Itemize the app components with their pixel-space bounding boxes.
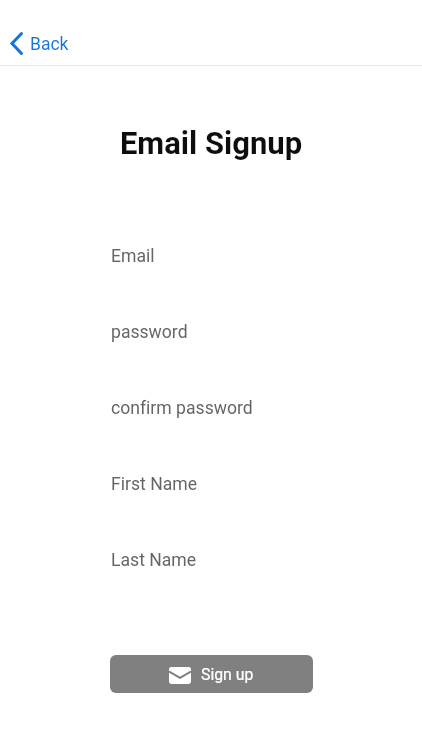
button[interactable]: Email: [111, 243, 315, 269]
button[interactable]: Back: [4, 28, 79, 59]
button[interactable]: Sign up: [110, 655, 313, 693]
staticText: Email: [111, 246, 155, 267]
staticText: Back: [30, 34, 69, 55]
button[interactable]: confirm password: [111, 395, 315, 421]
staticText: First Name: [111, 474, 198, 495]
staticText: Email Signup: [0, 125, 422, 161]
staticText: Sign up: [201, 665, 254, 684]
staticText: confirm password: [111, 398, 253, 419]
button[interactable]: Last Name: [111, 547, 315, 573]
other: Back: [10, 32, 23, 55]
staticText: Last Name: [111, 550, 197, 571]
button[interactable]: password: [111, 319, 315, 345]
staticText: password: [111, 322, 188, 343]
button[interactable]: First Name: [111, 471, 315, 497]
